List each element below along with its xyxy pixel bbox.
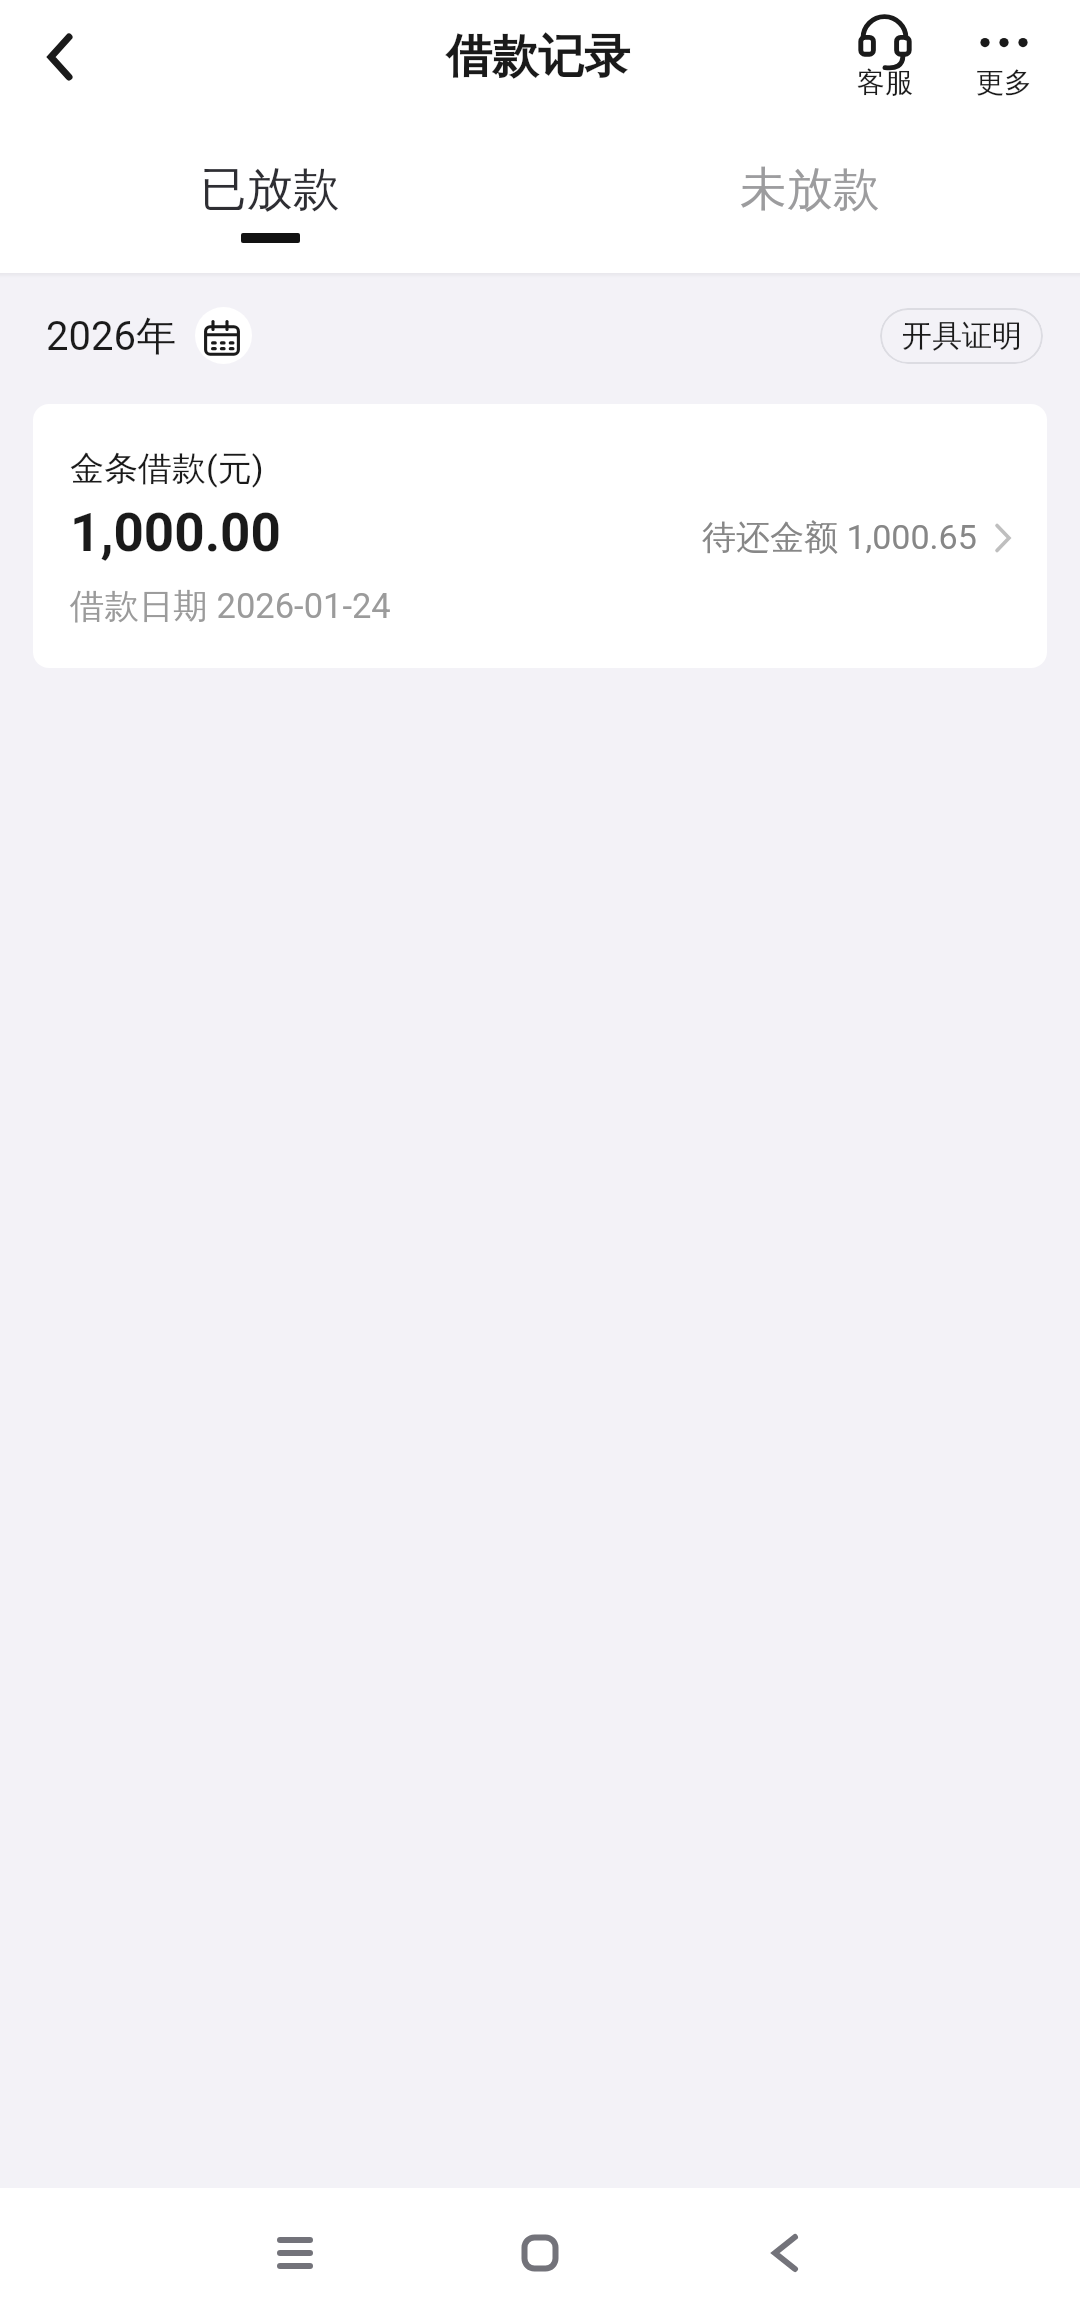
staticText: 客服 — [857, 65, 913, 100]
button[interactable]: More options — [957, 6, 1051, 106]
staticText: 开具证明 — [902, 317, 1022, 355]
button[interactable]: 开具证明 — [880, 308, 1043, 364]
button[interactable]: Back — [725, 2188, 845, 2317]
staticText: 借款记录 — [446, 28, 630, 86]
staticText: 更多 — [976, 65, 1032, 100]
staticText: 2026年 — [46, 311, 176, 361]
staticText: 1,000.00 — [70, 502, 281, 564]
button[interactable]: Home — [480, 2188, 600, 2317]
staticText: 未放款 — [740, 160, 880, 219]
button[interactable]: 已放款 — [0, 160, 540, 243]
staticText: 金条借款(元) — [70, 447, 264, 490]
button[interactable]: 客服 — [838, 6, 932, 106]
staticText: 已放款 — [200, 160, 340, 219]
button[interactable]: Back — [24, 21, 96, 93]
staticText: 借款日期 2026-01-24 — [70, 585, 391, 628]
button[interactable]: Pick year — [195, 307, 252, 364]
button[interactable]: Recent apps — [235, 2188, 355, 2317]
button[interactable]: 金条借款(元) — [33, 404, 1047, 668]
staticText: 待还金额 1,000.65 — [702, 516, 977, 559]
button[interactable]: 未放款 — [540, 160, 1080, 219]
